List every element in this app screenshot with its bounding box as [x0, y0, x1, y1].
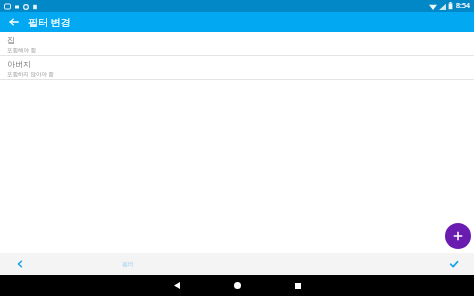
- staticText: 필터 변경: [28, 15, 71, 29]
- button[interactable]: 필터: [122, 260, 134, 268]
- button[interactable]: Add filter: [445, 223, 471, 249]
- button[interactable]: 집: [0, 32, 474, 56]
- staticText: 필터: [122, 260, 134, 268]
- button[interactable]: Home: [228, 275, 246, 296]
- staticText: 포함해야 함: [7, 46, 36, 54]
- staticText: 아버지: [7, 59, 31, 69]
- button[interactable]: Done: [446, 256, 462, 272]
- button[interactable]: Back: [168, 275, 186, 296]
- button[interactable]: Previous: [12, 256, 28, 272]
- button[interactable]: Back: [6, 14, 22, 30]
- button[interactable]: 아버지: [0, 56, 474, 80]
- button[interactable]: Recent apps: [289, 275, 307, 296]
- staticText: 집: [7, 35, 15, 45]
- staticText: 8:54: [456, 1, 470, 11]
- staticText: 포함하지 않아야 함: [7, 70, 54, 78]
